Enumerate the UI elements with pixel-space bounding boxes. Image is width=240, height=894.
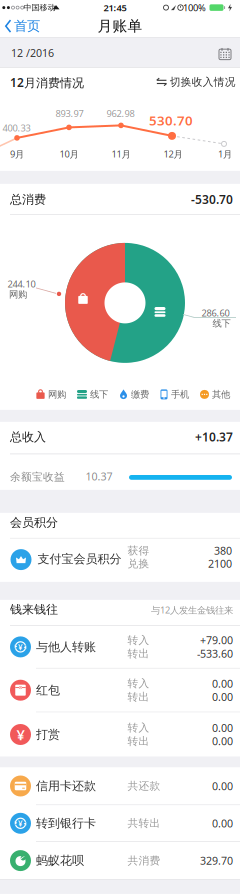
staticText: 会员积分 — [10, 515, 58, 530]
staticText: 12月消费情况 — [10, 74, 84, 90]
staticText: 100% — [183, 1, 206, 14]
staticText: 信用卡还款 — [36, 779, 96, 793]
button[interactable]: ¥ — [0, 805, 240, 841]
staticText: 12月 — [163, 148, 182, 160]
staticText: 线下 — [212, 318, 230, 329]
staticText: 线下 — [90, 389, 108, 400]
staticText: 网购 — [48, 389, 66, 400]
staticText: 余额宝收益 — [10, 470, 65, 483]
staticText: 转入 — [127, 634, 149, 647]
staticText: 0.00 — [212, 676, 233, 691]
staticText: 与12人发生金钱往来 — [151, 604, 233, 616]
staticText: 1月 — [218, 148, 232, 160]
staticText: 0.00 — [212, 734, 233, 748]
staticText: 329.70 — [200, 853, 233, 868]
staticText: ¥ — [18, 818, 23, 829]
staticText: 893.97 — [55, 107, 83, 120]
staticText: 12 /2016 — [11, 46, 54, 60]
staticText: ¥ — [18, 642, 23, 652]
staticText: 获得 — [127, 544, 149, 557]
staticText: 962.98 — [106, 107, 134, 120]
staticText: 400.33 — [2, 122, 30, 134]
staticText: 共还款 — [127, 779, 160, 792]
staticText: 9月 — [10, 148, 24, 160]
staticText: 红包 — [36, 683, 60, 697]
staticText: 其他 — [212, 389, 230, 400]
button[interactable]: 红包 — [0, 669, 240, 712]
staticText: 总消费 — [10, 192, 46, 207]
button[interactable]: ¥ — [0, 626, 240, 668]
button[interactable]: 首页 — [5, 15, 55, 37]
staticText: +10.37 — [195, 429, 233, 445]
staticText: 0.00 — [212, 690, 233, 704]
button[interactable]: 信用卡还款 — [0, 767, 240, 804]
staticText: ¥ — [16, 725, 24, 744]
staticText: -530.70 — [191, 191, 233, 207]
staticText: 244.10 — [7, 278, 35, 290]
staticText: 0.00 — [212, 816, 233, 830]
staticText: 网购 — [9, 289, 27, 300]
staticText: 蚂蚁花呗 — [36, 853, 84, 868]
staticText: -533.60 — [197, 646, 233, 661]
staticText: +79.00 — [200, 633, 233, 647]
staticText: 530.70 — [149, 111, 193, 129]
staticText: 总收入 — [10, 429, 46, 444]
staticText: 中国移动 — [23, 3, 55, 12]
staticText: 手机 — [171, 389, 189, 400]
staticText: 打赏 — [36, 727, 60, 742]
staticText: 转出 — [127, 690, 149, 703]
staticText: 0.00 — [212, 779, 233, 793]
staticText: 切换收入情况 — [170, 75, 236, 88]
staticText: 转入 — [127, 721, 149, 734]
staticText: 转出 — [127, 647, 149, 660]
staticText: 共消费 — [127, 854, 160, 867]
staticText: 首页 — [14, 18, 40, 34]
staticText: 2100 — [208, 556, 232, 571]
staticText: 共转出 — [127, 817, 160, 830]
staticText: 缴费 — [131, 389, 149, 400]
staticText: 转入 — [127, 677, 149, 690]
staticText: 兑换 — [127, 557, 149, 570]
staticText: 10.37 — [85, 469, 112, 483]
button[interactable]: 蚂蚁花呗 — [0, 842, 240, 879]
button[interactable]: 支付宝会员积分 — [0, 539, 240, 582]
staticText: 与他人转账 — [36, 639, 96, 654]
staticText: 钱来钱往 — [10, 602, 58, 617]
staticText: 转到银行卡 — [36, 816, 96, 831]
staticText: 转出 — [127, 735, 149, 748]
staticText: 380 — [214, 543, 232, 558]
button[interactable]: ¥ — [0, 712, 240, 756]
button[interactable]: 12 /2016 — [0, 38, 240, 68]
staticText: 10月 — [59, 148, 78, 160]
staticText: 0.00 — [212, 721, 233, 735]
staticText: 286.60 — [201, 307, 229, 319]
staticText: 月账单 — [97, 17, 142, 35]
button[interactable]: 切换收入情况 — [156, 75, 236, 88]
staticText: 支付宝会员积分 — [37, 552, 121, 566]
staticText: 21:45 — [103, 1, 126, 14]
staticText: 11月 — [111, 148, 130, 160]
